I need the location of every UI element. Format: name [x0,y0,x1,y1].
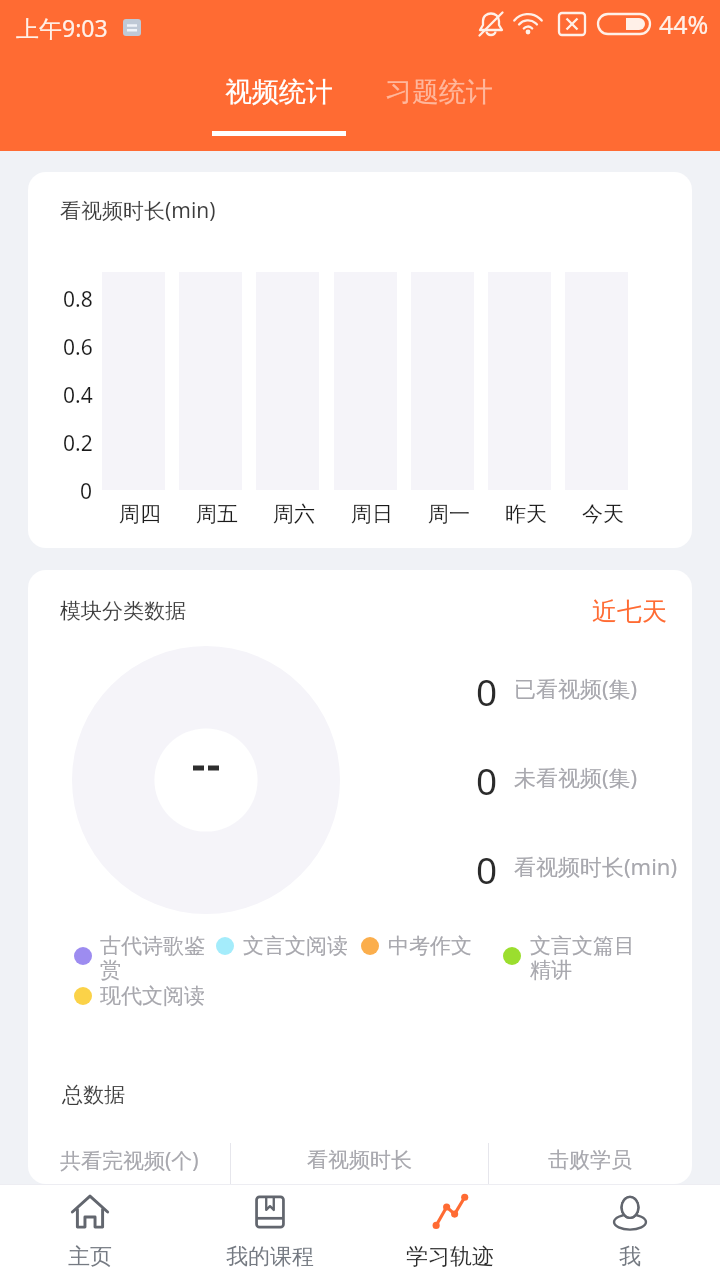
staticText: 看视频时长(min) [60,196,216,225]
other: Status icons [470,6,660,42]
staticText: 学习轨迹 [406,1243,494,1271]
staticText: 习题统计 [385,75,493,109]
staticText: 中考作文 [388,933,472,959]
button[interactable]: 视频统计 [199,70,359,136]
staticText: 文言文阅读 [243,933,348,959]
staticText: 周五 [196,501,238,527]
staticText: 0 [476,666,498,710]
button[interactable]: 主页 [0,1184,180,1280]
button[interactable]: 击败学员 [488,1136,692,1184]
staticText: 共看完视频(个) [60,1146,199,1175]
staticText: 主页 [68,1243,112,1271]
staticText: 昨天 [505,501,547,527]
staticText: 已看视频(集) [514,673,638,703]
staticText: 0 [80,477,93,506]
staticText: 0 [476,755,498,799]
staticText: 古代诗歌鉴 [100,933,205,959]
staticText: 周六 [273,501,315,527]
staticText: 0.2 [63,429,93,458]
staticText: 看视频时长 [307,1147,412,1173]
staticText: 0 [476,844,498,888]
staticText: 0.8 [63,285,93,314]
staticText: 44% [659,7,709,41]
staticText: 我 [619,1243,641,1271]
staticText: 精讲 [530,957,572,983]
staticText: 未看视频(集) [514,762,638,792]
staticText: 0.4 [63,381,93,410]
staticText: 现代文阅读 [100,983,205,1009]
button[interactable]: 习题统计 [359,70,519,136]
button[interactable]: 近七天 [578,590,680,632]
staticText: 近七天 [592,596,667,627]
button[interactable]: 我 [540,1184,720,1280]
staticText: 看视频时长(min) [514,851,678,881]
staticText: 视频统计 [225,75,333,109]
button[interactable]: 我的课程 [180,1184,360,1280]
staticText: 模块分类数据 [60,598,186,624]
staticText: 今天 [582,501,624,527]
button[interactable]: 看视频时长 [230,1136,488,1184]
staticText: 周日 [351,501,393,527]
staticText: 击败学员 [548,1147,632,1173]
staticText: 0.6 [63,333,93,362]
staticText: 文言文篇目 [530,933,635,959]
staticText: 上午9:03 [16,12,108,43]
staticText: 总数据 [62,1082,125,1108]
staticText: 周一 [428,501,470,527]
button[interactable]: 学习轨迹 [360,1184,540,1280]
staticText: 赏 [100,957,121,983]
staticText: 周四 [119,501,161,527]
button[interactable]: 共看完视频(个) [28,1136,230,1184]
staticText: 我的课程 [226,1243,314,1271]
